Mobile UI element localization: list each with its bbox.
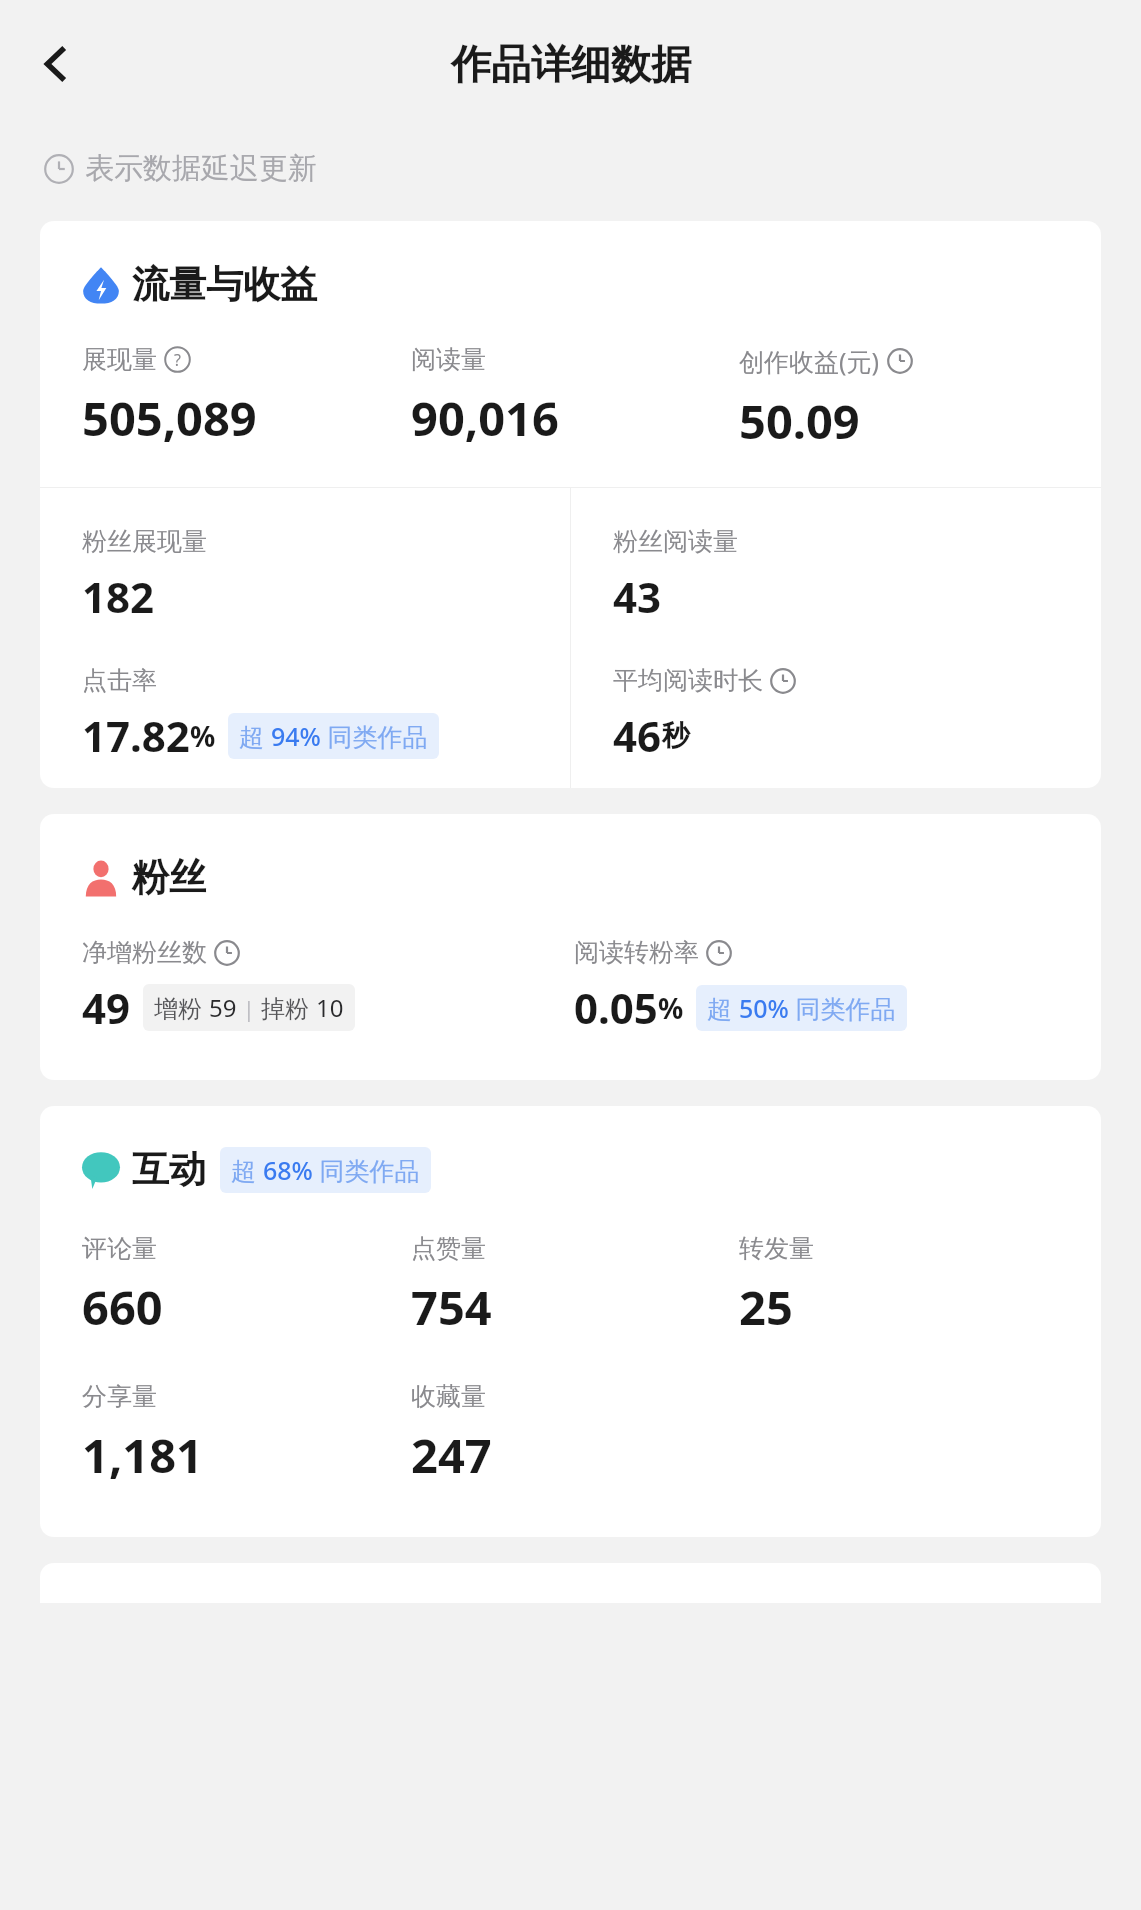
staticText: 505,089 <box>82 386 257 450</box>
staticText: 同类作品 <box>321 719 428 753</box>
staticText: 0.05 <box>574 979 658 1036</box>
staticText: 超 <box>707 991 739 1025</box>
button[interactable]: 超 <box>707 991 896 1025</box>
staticText: ? <box>174 349 181 371</box>
staticText: 点击率 <box>82 665 157 696</box>
staticText: 互动 <box>132 1146 206 1193</box>
button[interactable]: 超 <box>239 719 428 753</box>
staticText: 流量与收益 <box>132 261 317 308</box>
button[interactable]: Back <box>22 29 92 99</box>
button[interactable]: 互动 <box>40 1106 1101 1537</box>
staticText: 50.09 <box>739 389 860 453</box>
staticText: % <box>190 717 216 755</box>
staticText: 展现量 <box>82 344 157 375</box>
staticText: 25 <box>739 1275 793 1339</box>
staticText: 247 <box>411 1423 492 1487</box>
staticText: 净增粉丝数 <box>82 937 207 968</box>
staticText: 创作收益(元) <box>739 344 880 378</box>
staticText: 90,016 <box>411 386 559 450</box>
button[interactable]: 粉丝 <box>40 814 1101 1080</box>
staticText: 掉粉 <box>261 991 316 1024</box>
staticText: 阅读量 <box>411 344 486 375</box>
staticText: | <box>237 993 261 1023</box>
button[interactable]: 流量与收益 <box>40 221 1101 788</box>
staticText: 粉丝 <box>132 854 206 901</box>
staticText: 660 <box>82 1275 163 1339</box>
staticText: 增粉 <box>154 991 209 1024</box>
staticText: 粉丝展现量 <box>82 526 207 557</box>
staticText: 平均阅读时长 <box>613 665 763 696</box>
staticText: 同类作品 <box>313 1153 420 1187</box>
staticText: 17.82 <box>82 707 190 764</box>
staticText: 43 <box>613 568 662 625</box>
staticText: 分享量 <box>82 1381 157 1412</box>
staticText: % <box>658 989 684 1027</box>
staticText: 评论量 <box>82 1233 157 1264</box>
staticText: 49 <box>82 979 131 1036</box>
staticText: 收藏量 <box>411 1381 486 1412</box>
staticText: 68% <box>263 1153 313 1187</box>
staticText: 秒 <box>662 718 690 753</box>
staticText: 转发量 <box>739 1233 814 1264</box>
staticText: 同类作品 <box>789 991 896 1025</box>
staticText: 超 <box>231 1153 263 1187</box>
staticText: 点赞量 <box>411 1233 486 1264</box>
staticText: 1,181 <box>82 1423 203 1487</box>
staticText: 作品详细数据 <box>451 39 691 89</box>
staticText: 46 <box>613 707 662 764</box>
staticText: 粉丝阅读量 <box>613 526 738 557</box>
staticText: 50% <box>739 991 789 1025</box>
staticText: 59 <box>209 991 237 1024</box>
staticText: 阅读转粉率 <box>574 937 699 968</box>
staticText: 超 <box>239 719 271 753</box>
staticText: 182 <box>82 568 155 625</box>
staticText: 754 <box>411 1275 492 1339</box>
button[interactable]: 超 <box>231 1153 420 1187</box>
staticText: 表示数据延迟更新 <box>85 150 317 187</box>
staticText: 10 <box>316 991 344 1024</box>
staticText: 94% <box>271 719 321 753</box>
